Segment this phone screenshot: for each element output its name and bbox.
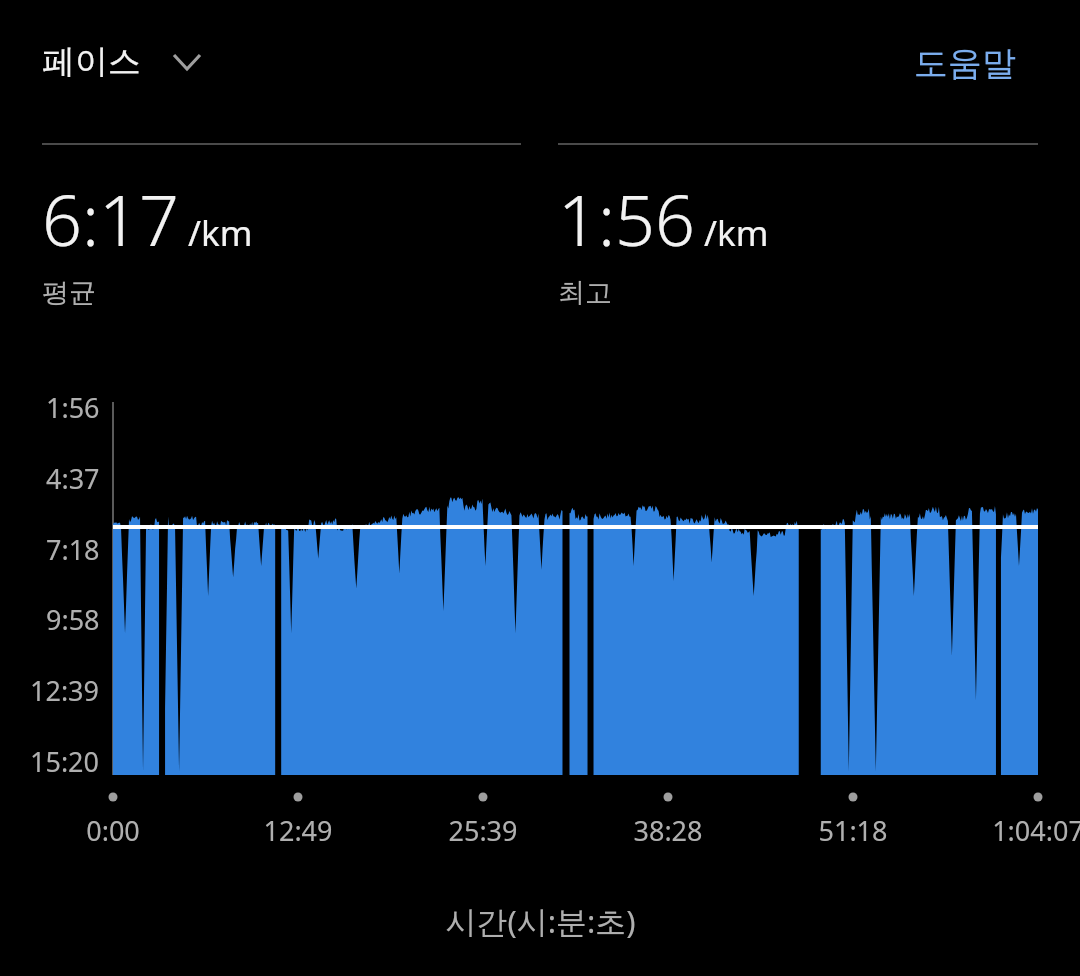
staticText: 도움말 — [914, 42, 1016, 85]
staticText: 1:56 — [46, 389, 100, 426]
staticText: 0:00 — [86, 812, 140, 849]
staticText: 평균 — [42, 276, 96, 310]
staticText: 6:17 — [42, 171, 179, 266]
button[interactable]: 1:56 — [558, 143, 1038, 310]
staticText: 12:39 — [30, 672, 100, 709]
staticText: 9:58 — [46, 601, 100, 638]
staticText: /km — [704, 209, 769, 257]
staticText: 12:49 — [263, 812, 333, 849]
staticText: 25:39 — [448, 812, 518, 849]
other: Change metric — [165, 40, 209, 84]
staticText: 38:28 — [633, 812, 703, 849]
staticText: 51:18 — [818, 812, 888, 849]
button[interactable]: 6:17 — [42, 143, 521, 310]
staticText: 15:20 — [30, 743, 100, 780]
staticText: 1:04:07 — [992, 812, 1080, 849]
staticText: 1:56 — [558, 171, 695, 266]
staticText: /km — [188, 209, 253, 257]
staticText: 4:37 — [46, 460, 100, 497]
staticText: 시간(시:분:초) — [445, 900, 636, 942]
button[interactable]: 페이스 — [42, 40, 209, 84]
staticText: 최고 — [558, 276, 612, 310]
staticText: 7:18 — [46, 531, 100, 568]
staticText: 페이스 — [42, 41, 141, 83]
button[interactable]: 도움말 — [908, 34, 1022, 93]
